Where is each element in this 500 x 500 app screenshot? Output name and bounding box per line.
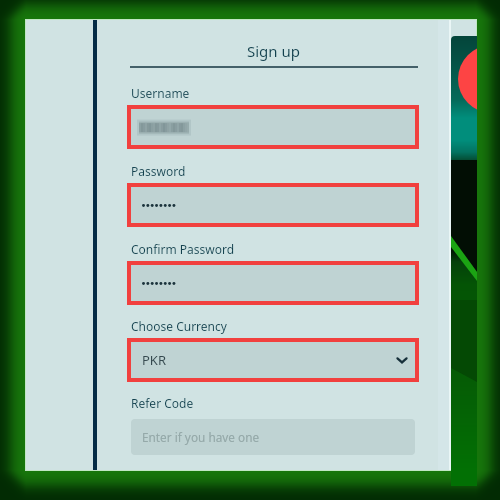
staticText: Sign up bbox=[247, 41, 300, 61]
button[interactable] bbox=[127, 261, 419, 305]
staticText: Password bbox=[131, 163, 186, 179]
button[interactable]: Enter if you have one bbox=[131, 419, 415, 455]
staticText: Confirm Password bbox=[131, 241, 235, 257]
staticText: Username bbox=[131, 85, 190, 101]
staticText: Enter if you have one bbox=[142, 429, 260, 445]
other: Open currency dropdown bbox=[396, 354, 408, 366]
staticText: PKR bbox=[142, 351, 166, 369]
button[interactable] bbox=[127, 183, 419, 227]
staticText: Refer Code bbox=[131, 395, 194, 411]
button[interactable] bbox=[127, 338, 419, 382]
staticText: Choose Currency bbox=[131, 318, 227, 334]
button[interactable] bbox=[127, 105, 419, 149]
